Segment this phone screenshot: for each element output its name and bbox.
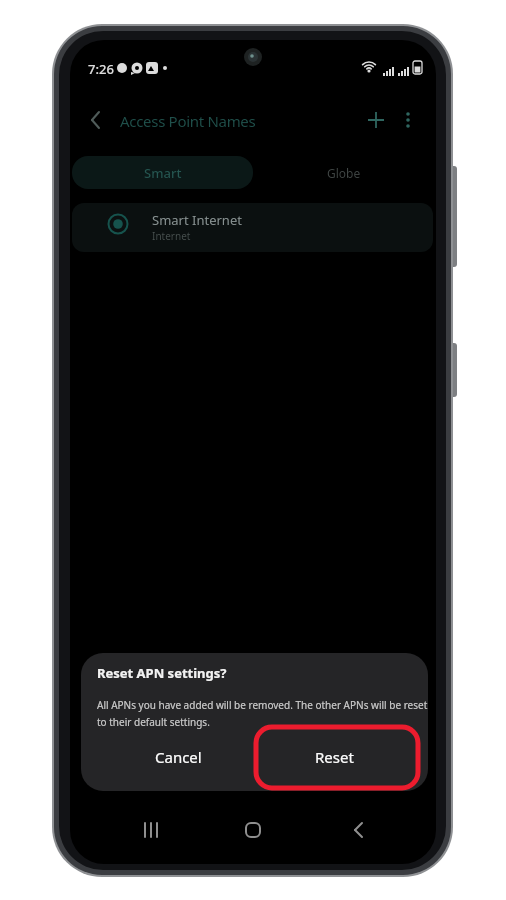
staticText: Smart Internet bbox=[152, 211, 242, 229]
button[interactable] bbox=[395, 104, 421, 136]
button[interactable]: Globe bbox=[253, 156, 434, 189]
button[interactable] bbox=[127, 806, 175, 854]
button[interactable] bbox=[360, 104, 392, 136]
staticText: 7:26 bbox=[88, 60, 114, 78]
button[interactable]: Reset bbox=[274, 735, 394, 779]
staticText: All APNs you have added will be removed.… bbox=[97, 698, 428, 712]
button[interactable]: Smart Internet bbox=[72, 203, 433, 252]
staticText: Reset bbox=[315, 747, 354, 767]
staticText: to their default settings. bbox=[97, 715, 210, 729]
staticText: Access Point Names bbox=[120, 111, 256, 131]
staticText: Smart bbox=[144, 164, 182, 182]
button[interactable] bbox=[229, 806, 277, 854]
button[interactable]: Cancel bbox=[118, 735, 238, 779]
staticText: Internet bbox=[152, 229, 191, 243]
button[interactable]: Smart bbox=[72, 156, 253, 189]
button[interactable] bbox=[80, 102, 112, 138]
button[interactable] bbox=[335, 806, 383, 854]
staticText: Reset APN settings? bbox=[97, 664, 227, 682]
staticText: Globe bbox=[327, 165, 361, 181]
staticText: Cancel bbox=[155, 747, 202, 767]
